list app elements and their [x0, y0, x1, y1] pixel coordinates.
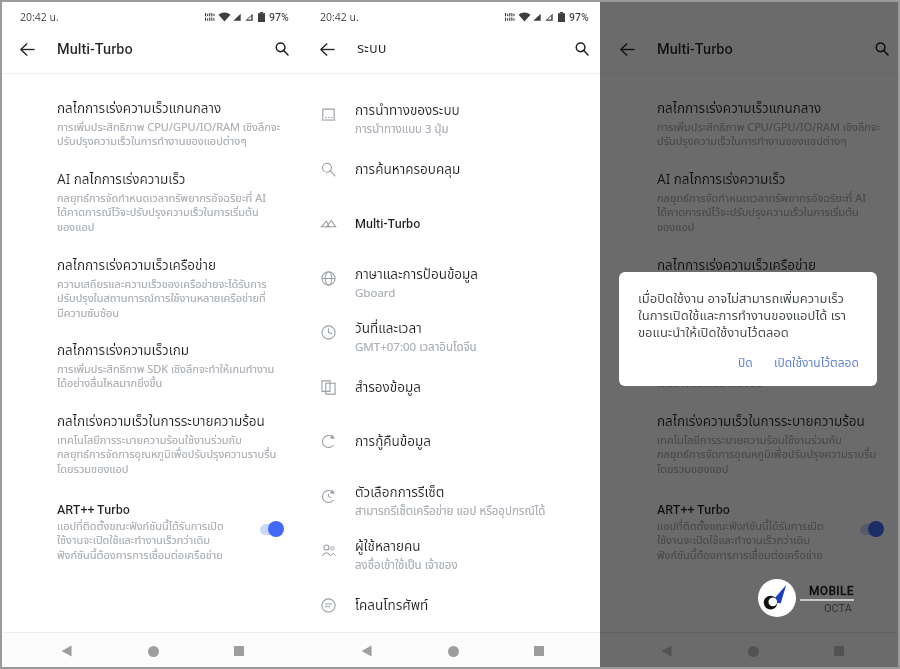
button[interactable]: การกู้คืนข้อมูล — [300, 413, 600, 468]
staticText: กลยุทธ์การจัดกำหนดเวลาทรัพยากรอัจฉริยะที… — [657, 190, 866, 236]
staticText: ART++ Turbo — [57, 502, 130, 517]
button[interactable]: Search — [268, 35, 296, 63]
staticText: Gboard — [355, 285, 396, 302]
button[interactable]: Search — [568, 35, 596, 63]
button[interactable]: กลไกการเร่งความเร็วเกม — [0, 341, 300, 392]
staticText: แอปที่ติดตั้งขณะฟังก์ชันนี้ได้รับการเปิด… — [57, 518, 224, 564]
staticText: 20:42 น. — [20, 10, 59, 26]
button[interactable]: Home — [433, 633, 473, 669]
staticText: ผู้ใช้หลายคน — [355, 537, 421, 557]
button[interactable]: กลไกการเร่งความเร็วเครือข่าย — [0, 256, 300, 322]
button[interactable]: Multi-Turbo — [300, 195, 600, 250]
button[interactable]: Home — [133, 633, 173, 669]
staticText: วันที่และเวลา — [355, 319, 422, 339]
staticText: การเพิ่มประสิทธิภาพ SDK เชิงลึกจะทำให้เก… — [657, 361, 875, 392]
button[interactable]: Navigate up — [613, 35, 641, 63]
staticText: เทคโนโลยีการระบายความร้อนใช้งานร่วมกับ ก… — [657, 432, 877, 478]
staticText: การค้นหาครอบคลุม — [355, 160, 461, 180]
staticText: การเพิ่มประสิทธิภาพ CPU/GPU/IO/RAM เชิงล… — [657, 119, 881, 150]
staticText: กลยุทธ์การจัดกำหนดเวลาทรัพยากรอัจฉริยะที… — [57, 190, 266, 236]
button[interactable]: ภาษาและการป้อนข้อมูล — [300, 250, 600, 305]
staticText: ART++ Turbo — [657, 502, 730, 517]
staticText: กลไกการเร่งความเร็วเครือข่าย — [657, 256, 817, 276]
staticText: 97% — [269, 11, 289, 23]
button[interactable]: Navigate up — [13, 35, 41, 63]
button[interactable]: ผู้ใช้หลายคน — [300, 522, 600, 577]
staticText: กลไกการเร่งความเร็วเครือข่าย — [57, 256, 217, 276]
staticText: การนำทางแบบ 3 ปุ่ม — [355, 121, 449, 138]
button[interactable]: ART++ Turbo — [0, 502, 300, 564]
staticText: Multi-Turbo — [355, 216, 421, 231]
button[interactable]: ปิด — [730, 350, 761, 376]
staticText: สามารถรีเซ็ตเครือข่าย แอป หรืออุปกรณ์ได้ — [355, 503, 546, 520]
button[interactable]: กลไกการเร่งความเร็วแกนกลาง — [600, 99, 900, 150]
button[interactable]: AI กลไกการเร่งความเร็ว — [0, 170, 300, 236]
staticText: กลไกการเร่งความเร็วเกม — [657, 341, 790, 361]
staticText: 20:42 น. — [320, 10, 359, 26]
button[interactable]: วันที่และเวลา — [300, 304, 600, 359]
button[interactable]: ART++ Turbo — [600, 502, 900, 564]
button[interactable]: Recent apps — [819, 633, 859, 669]
staticText: OCTA — [824, 602, 852, 615]
button[interactable]: สำรองข้อมูล — [300, 359, 600, 414]
staticText: การเพิ่มประสิทธิภาพ CPU/GPU/IO/RAM เชิงล… — [57, 119, 281, 150]
button[interactable]: กลไกเร่งความเร็วในการระบายความร้อน — [600, 412, 900, 478]
staticText: กลไกเร่งความเร็วในการระบายความร้อน — [57, 412, 265, 432]
button[interactable]: การค้นหาครอบคลุม — [300, 141, 600, 196]
staticText: ความเสถียรและความเร็วของเครือข่ายจะได้รั… — [657, 276, 867, 322]
staticText: เทคโนโลยีการระบายความร้อนใช้งานร่วมกับ ก… — [57, 432, 277, 478]
button[interactable]: Search — [868, 35, 896, 63]
staticText: ตัวเลือกการรีเซ็ต — [355, 483, 445, 503]
staticText: GMT+07:00 เวลาอินโดจีน — [355, 339, 477, 356]
staticText: สำรองข้อมูล — [355, 378, 421, 398]
button[interactable]: Navigate up — [313, 35, 341, 63]
button[interactable]: Back — [47, 633, 87, 669]
staticText: ความเสถียรและความเร็วของเครือข่ายจะได้รั… — [57, 276, 267, 322]
button[interactable]: โคลนโทรศัพท์ — [300, 577, 600, 632]
button[interactable]: กลไกการเร่งความเร็วแกนกลาง — [0, 99, 300, 150]
staticText: ภาษาและการป้อนข้อมูล — [355, 265, 479, 285]
staticText: การกู้คืนข้อมูล — [355, 432, 431, 452]
staticText: ระบบ — [357, 38, 387, 60]
staticText: กลไกการเร่งความเร็วแกนกลาง — [57, 99, 222, 119]
staticText: ลงชื่อเข้าใช้เป็น เจ้าของ — [355, 557, 458, 574]
button[interactable]: เปิดใช้งานไว้ตลอด — [772, 350, 861, 376]
button[interactable]: กลไกเร่งความเร็วในการระบายความร้อน — [0, 412, 300, 478]
button[interactable]: กลไกการเร่งความเร็วเครือข่าย — [600, 256, 900, 322]
button[interactable]: ตัวเลือกการรีเซ็ต — [300, 468, 600, 523]
button[interactable]: Back — [647, 633, 687, 669]
button[interactable]: Recent apps — [519, 633, 559, 669]
staticText: Multi-Turbo — [57, 41, 133, 58]
staticText: Multi-Turbo — [657, 41, 733, 58]
staticText: โคลนโทรศัพท์ — [355, 596, 429, 616]
button[interactable]: กลไกการเร่งความเร็วเกม — [600, 341, 900, 392]
staticText: AI กลไกการเร่งความเร็ว — [57, 170, 186, 190]
button[interactable]: ART++ Turbo switch — [859, 521, 884, 537]
staticText: AI กลไกการเร่งความเร็ว — [657, 170, 786, 190]
staticText: กลไกเร่งความเร็วในการระบายความร้อน — [657, 412, 865, 432]
button[interactable]: AI กลไกการเร่งความเร็ว — [600, 170, 900, 236]
staticText: การนำทางของระบบ — [355, 101, 460, 121]
button[interactable]: การนำทางของระบบ — [300, 86, 600, 141]
button[interactable]: Home — [733, 633, 773, 669]
button[interactable]: Recent apps — [219, 633, 259, 669]
button[interactable]: ART++ Turbo switch — [259, 521, 284, 537]
staticText: MOBILE — [809, 584, 854, 598]
staticText: เมื่อปิดใช้งาน อาจไม่สามารถเพิ่มความเร็ว… — [638, 289, 846, 343]
staticText: การเพิ่มประสิทธิภาพ SDK เชิงลึกจะทำให้เก… — [57, 361, 275, 392]
staticText: แอปที่ติดตั้งขณะฟังก์ชันนี้ได้รับการเปิด… — [657, 518, 824, 564]
staticText: กลไกการเร่งความเร็วแกนกลาง — [657, 99, 822, 119]
staticText: กลไกการเร่งความเร็วเกม — [57, 341, 190, 361]
button[interactable]: Back — [347, 633, 387, 669]
staticText: 97% — [569, 11, 589, 23]
